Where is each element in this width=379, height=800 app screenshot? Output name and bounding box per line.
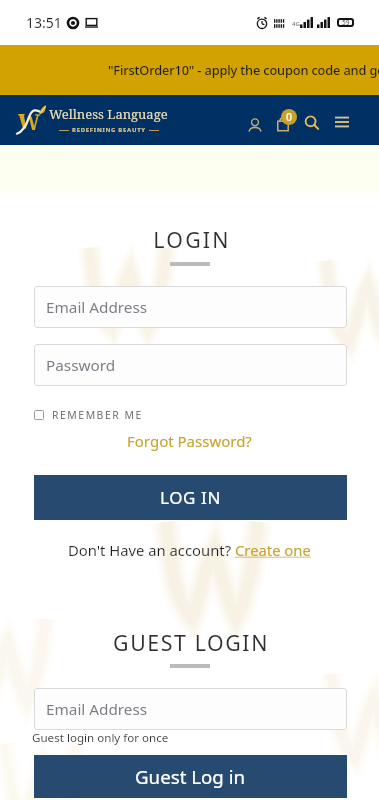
staticText: 59	[342, 18, 350, 27]
staticText: Guest login only for once	[32, 730, 169, 746]
button[interactable]: Create one	[235, 540, 311, 560]
button[interactable]: Search	[300, 111, 324, 135]
button[interactable]: Guest Log in	[34, 755, 347, 798]
staticText: "FirstOrder10" - apply the coupon code a…	[108, 61, 379, 78]
button[interactable]: Account	[242, 112, 268, 138]
staticText: Email Address	[46, 699, 148, 720]
staticText: 4G	[292, 20, 300, 28]
staticText: LOG IN	[160, 486, 221, 509]
staticText: Guest Log in	[135, 764, 246, 789]
button[interactable]: Menu	[330, 110, 354, 134]
button[interactable]: Forgot Password?	[127, 431, 252, 451]
staticText: Don't Have an account?	[68, 540, 235, 560]
staticText: LOGIN	[153, 225, 231, 254]
staticText: Wellness Language	[49, 105, 168, 123]
button[interactable]: Email Address	[34, 688, 347, 730]
button[interactable]: Password	[34, 344, 347, 386]
button[interactable]: REMEMBER ME	[34, 408, 143, 422]
button[interactable]: LOG IN	[34, 475, 347, 520]
staticText: REDEFINING BEAUTY	[72, 126, 146, 134]
button[interactable]: Cart	[272, 105, 302, 135]
staticText: 13:51	[26, 13, 62, 32]
staticText: Password	[46, 355, 116, 376]
staticText: REMEMBER ME	[52, 408, 143, 422]
staticText: 0	[286, 110, 293, 124]
staticText: GUEST LOGIN	[113, 628, 269, 657]
staticText: Email Address	[46, 297, 148, 318]
button[interactable]: Email Address	[34, 286, 347, 328]
